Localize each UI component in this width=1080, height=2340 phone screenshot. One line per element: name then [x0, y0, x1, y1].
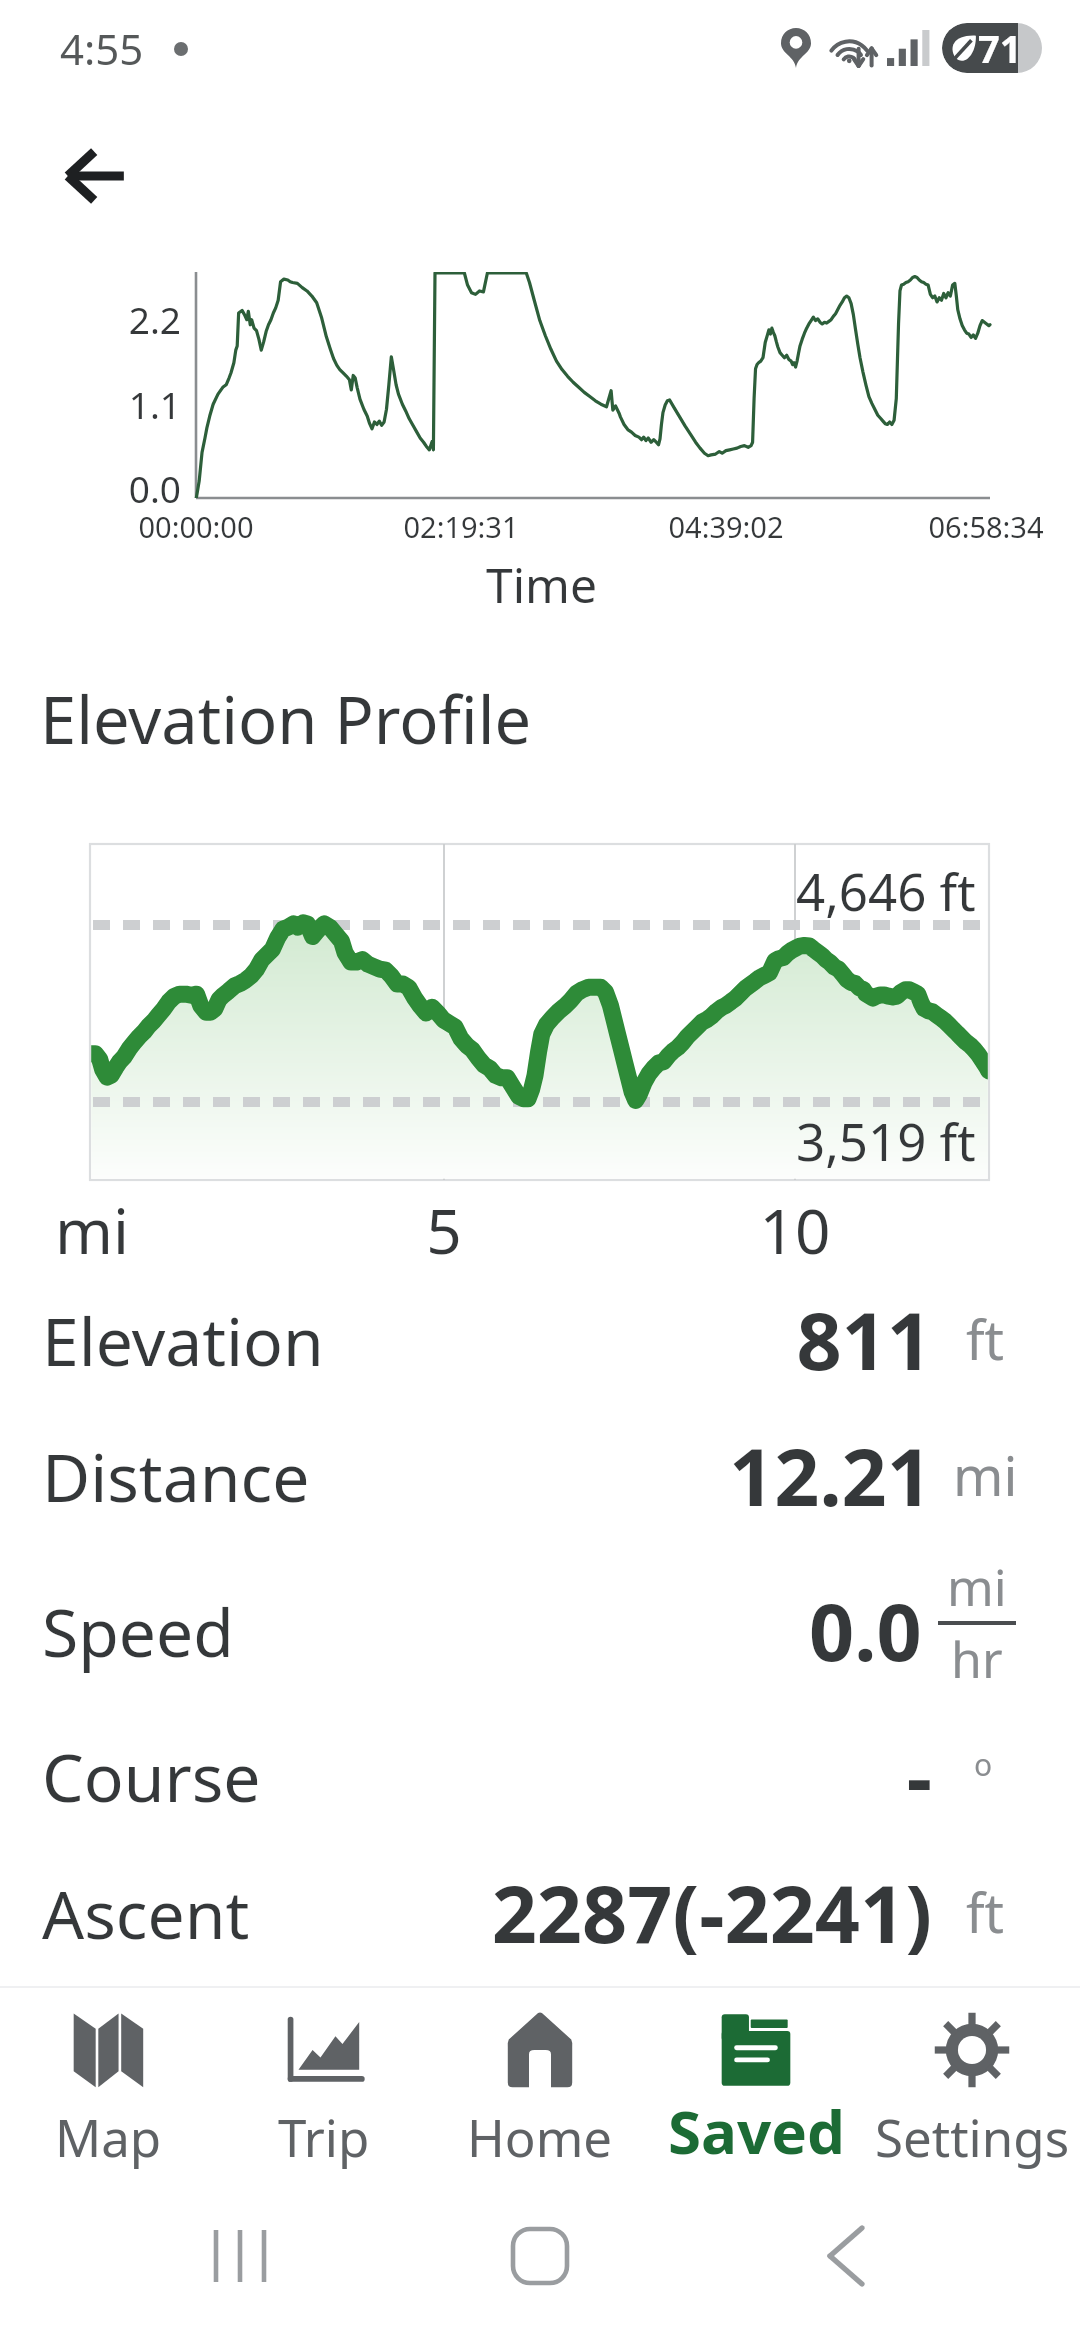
staticText: -	[0, 1722, 932, 1830]
staticText: 3,519 ft	[796, 1106, 976, 1175]
staticText: 71	[978, 23, 1022, 72]
staticText: 1.1	[0, 379, 181, 429]
staticText: Time	[486, 552, 598, 617]
staticText: Home	[467, 2102, 613, 2171]
staticText: mi	[953, 1438, 1018, 1512]
staticText: hr	[951, 1625, 1003, 1693]
staticText: Course	[42, 1731, 261, 1821]
button[interactable]: Back	[53, 132, 141, 220]
staticText: Map	[55, 2102, 162, 2171]
button[interactable]: Speed	[0, 1548, 1080, 1698]
staticText: ft	[966, 1302, 1005, 1376]
staticText: 811	[0, 1286, 932, 1394]
staticText: Trip	[278, 2102, 370, 2171]
button[interactable]: Distance	[0, 1410, 1080, 1542]
staticText: 2287(-2241)	[0, 1859, 932, 1967]
staticText: Elevation	[42, 1295, 324, 1385]
staticText: mi	[55, 1188, 129, 1272]
staticText: 10	[695, 1188, 895, 1272]
staticText: 5	[344, 1188, 544, 1272]
button[interactable]: Course	[0, 1710, 1080, 1842]
staticText: 0.0	[809, 1577, 922, 1685]
staticText: 12.21	[0, 1422, 932, 1530]
staticText: o	[974, 1744, 993, 1785]
staticText: 0.0	[0, 463, 181, 513]
staticText: 00:00:00	[46, 507, 346, 546]
button[interactable]: Settings	[864, 1986, 1080, 2178]
staticText: ft	[966, 1875, 1005, 1949]
staticText: Ascent	[42, 1868, 250, 1958]
button[interactable]: Map	[0, 1986, 216, 2178]
button[interactable]: Elevation	[0, 1274, 1080, 1406]
staticText: 2.2	[0, 294, 181, 344]
staticText: mi	[947, 1553, 1007, 1621]
staticText: Elevation Profile	[40, 675, 532, 764]
staticText: Saved	[668, 2090, 845, 2172]
staticText: 06:58:34	[836, 507, 1080, 546]
staticText: Settings	[875, 2102, 1070, 2171]
staticText: Distance	[42, 1431, 310, 1521]
staticText: 4:55	[60, 20, 144, 77]
button[interactable]: Ascent	[0, 1847, 1080, 1979]
staticText: 04:39:02	[576, 507, 876, 546]
staticText: 4,646 ft	[796, 856, 976, 925]
button[interactable]: Home	[432, 1986, 648, 2178]
button[interactable]: Saved	[648, 1986, 864, 2178]
staticText: Speed	[42, 1586, 234, 1676]
button[interactable]: Trip	[216, 1986, 432, 2178]
staticText: 02:19:31	[311, 507, 611, 546]
